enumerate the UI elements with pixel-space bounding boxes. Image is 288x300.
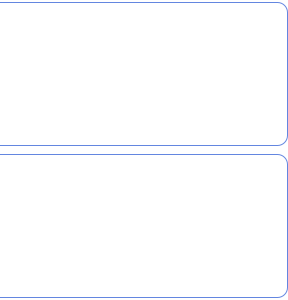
button[interactable]: First card [0,2,287,145]
button[interactable]: Second card [0,154,287,297]
